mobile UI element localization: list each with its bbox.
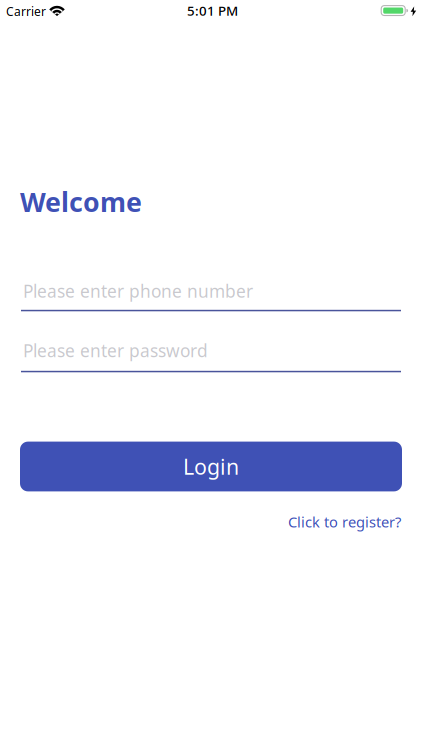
button[interactable]: Please enter password (21, 335, 401, 371)
staticText: Login (183, 452, 239, 481)
button[interactable]: Please enter phone number (21, 276, 401, 312)
staticText: 5:01 PM (187, 2, 238, 19)
staticText: Please enter phone number (23, 279, 253, 302)
staticText: Please enter password (23, 339, 208, 362)
button[interactable]: Login (20, 442, 402, 491)
staticText: Welcome (20, 184, 142, 219)
button[interactable]: Click to register? (288, 512, 401, 531)
staticText: Carrier (6, 3, 46, 19)
staticText: Click to register? (288, 512, 401, 531)
